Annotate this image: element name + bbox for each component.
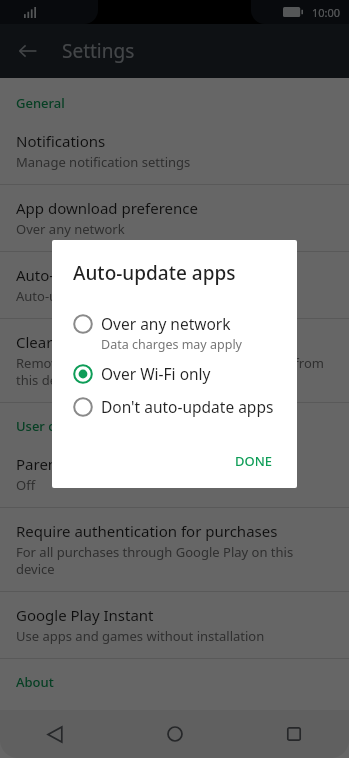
button[interactable]: DONE (225, 446, 283, 476)
button[interactable]: Notifications (0, 118, 349, 184)
button[interactable]: Recent apps (273, 713, 315, 755)
staticText: About (16, 673, 54, 691)
staticText: Clear local search history (16, 332, 192, 352)
staticText: Remove all the searches you have perform… (16, 354, 333, 389)
staticText: Use apps and games without installation (16, 627, 265, 645)
button[interactable]: Require authentication for purchases (0, 508, 349, 591)
staticText: General (16, 94, 65, 112)
staticText: 10:00 (312, 5, 341, 20)
staticText: Over any network (16, 220, 125, 238)
staticText: Over any network (101, 313, 231, 334)
staticText: Off (16, 476, 36, 494)
staticText: Manage notification settings (16, 153, 191, 171)
staticText: Google Play Instant (16, 605, 154, 625)
staticText: App download preference (16, 198, 198, 218)
staticText: Auto-update apps over Wi-Fi only (16, 287, 218, 305)
button[interactable]: Don't auto-update apps (52, 391, 297, 424)
staticText: Auto-update apps (73, 260, 236, 286)
staticText: Settings (62, 38, 135, 64)
button[interactable]: Home (154, 713, 196, 755)
staticText: Parental controls (16, 454, 136, 474)
button[interactable]: Back (8, 31, 48, 71)
button[interactable]: Parental controls (0, 441, 349, 507)
staticText: For all purchases through Google Play on… (16, 543, 333, 578)
staticText: DONE (235, 452, 273, 470)
button[interactable]: App download preference (0, 185, 349, 251)
button[interactable]: Over any network (52, 308, 297, 358)
staticText: Don't auto-update apps (101, 396, 274, 417)
staticText: Over Wi-Fi only (101, 363, 211, 384)
staticText: User controls (16, 417, 99, 435)
button[interactable]: Auto-update apps (0, 252, 349, 318)
staticText: Data charges may apply (101, 336, 242, 353)
button[interactable]: Over Wi-Fi only (52, 358, 297, 391)
button[interactable]: Google Play Instant (0, 592, 349, 658)
button[interactable]: Back (34, 713, 76, 755)
staticText: Require authentication for purchases (16, 521, 278, 541)
staticText: Auto-update apps (16, 265, 143, 285)
staticText: Notifications (16, 131, 106, 151)
button[interactable]: Clear local search history (0, 319, 349, 402)
